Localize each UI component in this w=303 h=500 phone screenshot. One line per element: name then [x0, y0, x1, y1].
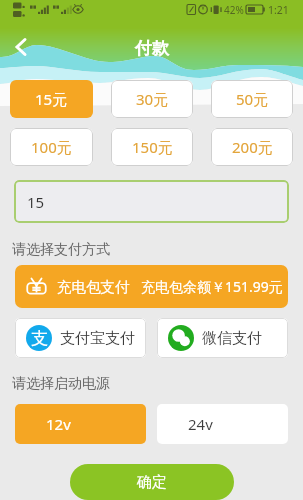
button[interactable]: 充电包支付	[15, 265, 288, 308]
button[interactable]: 12v	[15, 404, 146, 444]
staticText: 24v	[188, 414, 213, 434]
button[interactable]: 100元	[10, 128, 93, 166]
staticText: 确定	[137, 473, 167, 492]
staticText: 充电包余额￥151.99元	[141, 277, 283, 296]
staticText: 30元	[136, 89, 169, 109]
staticText: 请选择启动电源	[12, 375, 110, 393]
staticText: 请选择支付方式	[12, 241, 110, 259]
staticText: 100元	[31, 137, 72, 157]
staticText: 42%	[224, 3, 244, 17]
staticText: 150元	[132, 137, 173, 157]
staticText: 15元	[35, 89, 68, 109]
button[interactable]: 15	[14, 180, 289, 223]
button[interactable]: 200元	[211, 128, 293, 166]
button[interactable]: 150元	[111, 128, 193, 166]
button[interactable]: 微信支付	[157, 318, 288, 358]
staticText: 1:21	[268, 3, 289, 17]
button[interactable]: Back	[6, 32, 36, 62]
staticText: 充电包支付	[57, 278, 130, 296]
button[interactable]: 30元	[111, 80, 193, 118]
staticText: 200元	[232, 137, 273, 157]
button[interactable]: 24v	[157, 404, 288, 444]
staticText: 微信支付	[202, 329, 262, 348]
staticText: 12v	[46, 414, 71, 434]
button[interactable]: 支	[15, 318, 146, 358]
staticText: 支付宝支付	[60, 329, 135, 348]
button[interactable]: 确定	[70, 464, 234, 500]
staticText: 支	[31, 328, 48, 349]
button[interactable]: 50元	[211, 80, 293, 118]
staticText: 15	[27, 192, 45, 212]
staticText: 50元	[236, 89, 269, 109]
staticText: 付款	[135, 38, 169, 59]
button[interactable]: 15元	[10, 80, 93, 118]
